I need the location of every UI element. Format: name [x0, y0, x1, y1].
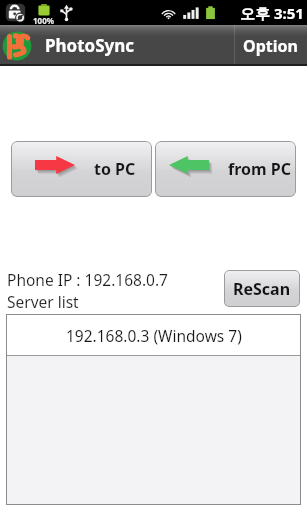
staticText: Server list — [7, 291, 79, 311]
staticText: ReScan — [233, 278, 291, 300]
button[interactable]: ReScan — [224, 270, 300, 307]
button[interactable]: from PC — [155, 141, 296, 197]
staticText: from PC — [228, 158, 291, 180]
button[interactable]: PhotoSync app icon — [0, 25, 234, 66]
staticText: 192.168.0.3 (Windows 7) — [66, 325, 242, 346]
staticText: to PC — [94, 158, 136, 180]
staticText: Phone IP : 192.168.0.7 — [7, 269, 168, 290]
staticText: PhotoSync — [45, 34, 135, 57]
staticText: 100% — [33, 15, 54, 26]
other: PhotoSync app icon — [2, 31, 32, 61]
staticText: 오후 3:51 — [240, 3, 304, 23]
staticText: Option — [243, 35, 298, 57]
button[interactable]: Option — [234, 25, 307, 66]
button[interactable]: 192.168.0.3 (Windows 7) — [7, 315, 300, 355]
button[interactable]: to PC — [11, 141, 152, 197]
